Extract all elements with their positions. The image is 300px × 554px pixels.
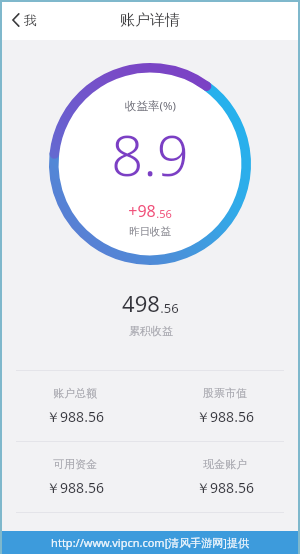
button[interactable]: 股票市值 [150, 376, 300, 436]
button[interactable]: 可用资金 [0, 447, 150, 507]
staticText: 账户详情 [120, 11, 180, 30]
staticText: 收益率(%) [125, 98, 176, 114]
staticText: ￥988.56 [196, 478, 254, 497]
staticText: ￥988.56 [46, 478, 104, 497]
staticText: 累积收益 [129, 324, 173, 338]
staticText: ￥988.56 [196, 407, 254, 426]
staticText: 昨日收益 [129, 225, 171, 238]
staticText: 股票市值 [203, 386, 247, 400]
staticText: +98 [128, 200, 156, 222]
staticText: 现金账户 [203, 457, 247, 471]
staticText: ￥988.56 [46, 407, 104, 426]
staticText: .56 [156, 206, 172, 221]
button[interactable]: 账户总额 [0, 376, 150, 436]
button[interactable]: 返回 我 [4, 4, 45, 36]
staticText: .56 [160, 299, 179, 317]
button[interactable]: 现金账户 [150, 447, 300, 507]
staticText: 498 [122, 288, 160, 318]
staticText: 我 [24, 12, 37, 28]
staticText: http://www.vipcn.com[清风手游网]提供 [51, 535, 249, 550]
staticText: 8.9 [111, 116, 189, 192]
staticText: 可用资金 [53, 457, 97, 471]
staticText: 账户总额 [53, 386, 97, 400]
